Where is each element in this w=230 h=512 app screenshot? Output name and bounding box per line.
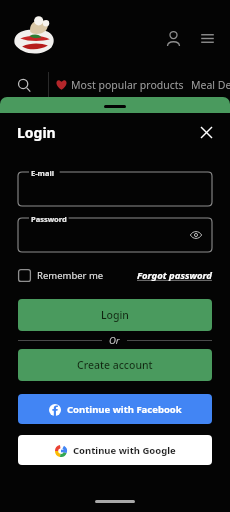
staticText: Continue with Facebook	[67, 403, 182, 416]
button[interactable]: Forgot password	[137, 269, 212, 282]
staticText: Create account	[77, 358, 153, 372]
staticText: Remember me	[37, 269, 104, 282]
button[interactable]: Menu	[194, 25, 220, 51]
button[interactable]: Continue with Google	[18, 435, 212, 465]
button[interactable]: Most popular products	[56, 72, 230, 97]
button[interactable]: Remember me	[18, 269, 104, 282]
staticText: Meal Deal	[191, 78, 230, 92]
staticText: Login	[101, 308, 129, 322]
staticText: Forgot password	[137, 269, 212, 282]
button[interactable]: Account	[160, 25, 186, 51]
staticText: Password	[31, 214, 67, 224]
button[interactable]: Create account	[18, 349, 212, 381]
button[interactable]: Login	[18, 299, 212, 331]
button[interactable]: Close	[194, 120, 218, 144]
button[interactable]: Show password	[187, 226, 205, 244]
button[interactable]: Search	[0, 72, 48, 97]
staticText: Login	[17, 123, 56, 142]
staticText: Or	[109, 334, 120, 347]
button[interactable]: Continue with Facebook	[18, 394, 212, 424]
staticText: Continue with Google	[73, 444, 176, 457]
staticText: Most popular products	[71, 78, 184, 92]
staticText: E-mail	[31, 168, 54, 178]
